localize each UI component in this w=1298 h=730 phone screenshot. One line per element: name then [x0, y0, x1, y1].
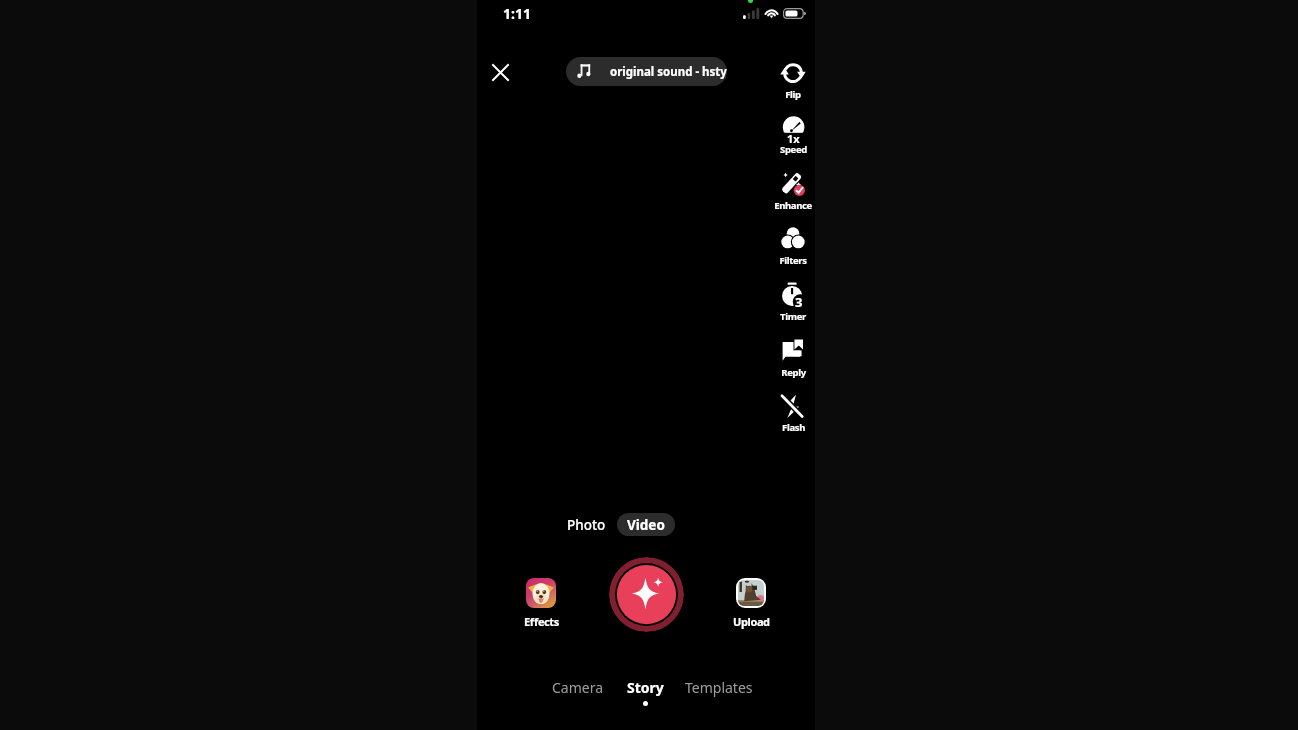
button[interactable]: Record	[609, 557, 684, 632]
staticText: Video	[627, 516, 665, 534]
staticText: Flip	[785, 88, 801, 101]
staticText: 3	[795, 293, 803, 311]
button[interactable]: Camera	[546, 676, 610, 703]
button[interactable]: Templates	[679, 676, 759, 703]
button[interactable]: Enhance	[765, 171, 821, 212]
staticText: Reply	[781, 366, 806, 379]
staticText: Flash	[782, 421, 805, 434]
staticText: Photo	[567, 516, 606, 534]
staticText: 1x	[787, 131, 800, 146]
staticText: 1:11	[503, 4, 531, 23]
staticText: original sound - hstyles	[610, 64, 727, 80]
button[interactable]: 3	[765, 282, 821, 323]
staticText: Filters	[779, 254, 807, 267]
staticText: Camera	[552, 678, 604, 697]
staticText: Timer	[780, 310, 806, 323]
staticText: Enhance	[774, 199, 812, 212]
button[interactable]: 1x	[765, 115, 821, 156]
button[interactable]: Story	[621, 676, 670, 708]
button[interactable]: Video	[617, 513, 675, 536]
button[interactable]: Reply	[765, 338, 821, 379]
button[interactable]: Effects	[501, 578, 581, 629]
button[interactable]: Flip	[765, 60, 821, 101]
button[interactable]: Filters	[765, 226, 821, 267]
staticText: Templates	[685, 678, 753, 697]
button[interactable]: Close	[484, 56, 516, 88]
button[interactable]: Flash	[765, 393, 821, 434]
staticText: Speed	[780, 143, 807, 156]
staticText: Upload	[733, 614, 770, 629]
staticText: Effects	[524, 614, 559, 629]
button[interactable]: Photo	[560, 513, 612, 536]
staticText: Story	[627, 678, 664, 697]
button[interactable]: original sound - hstyles	[566, 57, 727, 86]
button[interactable]: Upload	[711, 578, 791, 629]
